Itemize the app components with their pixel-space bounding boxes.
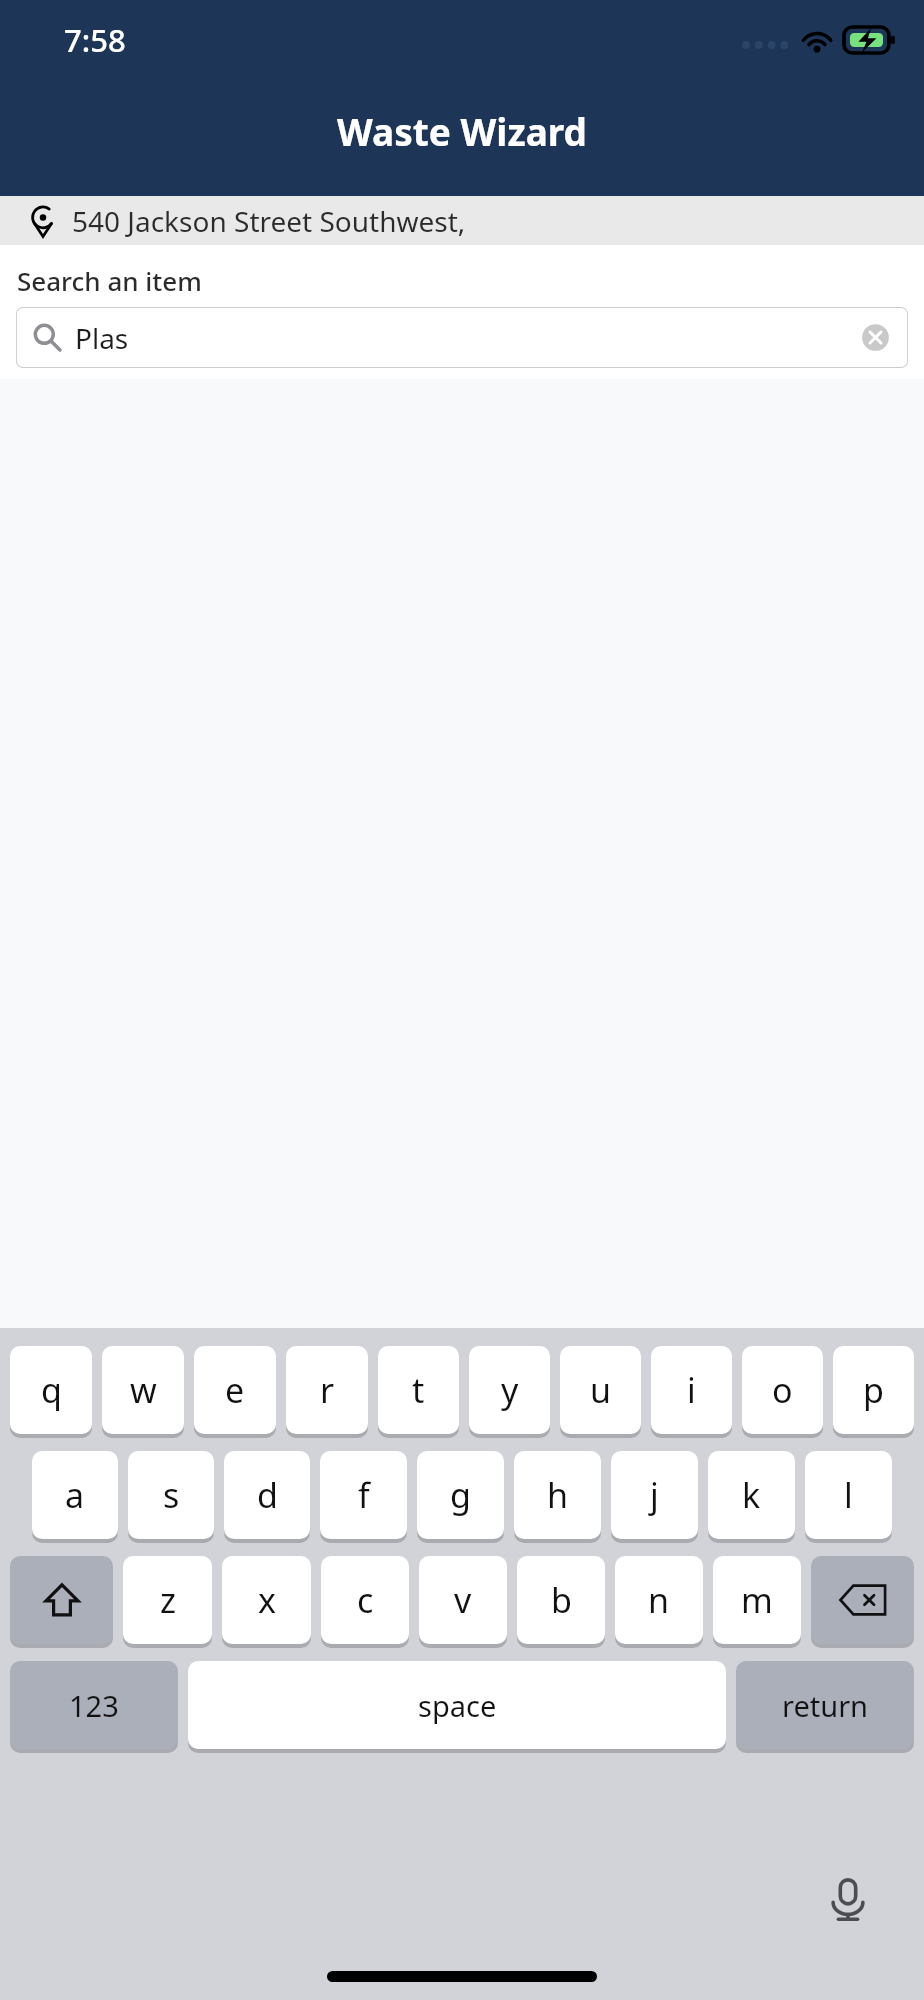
staticText: u	[590, 1367, 612, 1413]
staticText: r	[320, 1367, 335, 1413]
button[interactable]: f	[320, 1451, 407, 1539]
staticText: j	[650, 1472, 659, 1518]
button[interactable]: a	[32, 1451, 118, 1539]
staticText: Waste Wizard	[337, 106, 587, 156]
staticText: 7:58	[64, 19, 126, 61]
staticText: 540 Jackson Street Southwest,	[72, 202, 466, 240]
staticText: h	[547, 1472, 569, 1518]
staticText: y	[501, 1367, 519, 1413]
button[interactable]: u	[560, 1346, 641, 1434]
staticText: k	[742, 1472, 761, 1518]
button[interactable]: d	[224, 1451, 310, 1539]
button[interactable]: q	[10, 1346, 92, 1434]
staticText: e	[225, 1367, 245, 1413]
button[interactable]: z	[123, 1556, 212, 1644]
staticText: z	[160, 1577, 176, 1623]
button[interactable]: x	[222, 1556, 311, 1644]
button[interactable]: Plas	[16, 307, 908, 368]
button[interactable]: o	[742, 1346, 823, 1434]
staticText: p	[863, 1367, 884, 1413]
button[interactable]: Shift	[10, 1556, 113, 1644]
button[interactable]: n	[615, 1556, 703, 1644]
button[interactable]: 540 Jackson Street Southwest,	[0, 196, 924, 245]
staticText: o	[772, 1367, 793, 1413]
staticText: d	[257, 1472, 278, 1518]
button[interactable]: r	[286, 1346, 368, 1434]
button[interactable]: v	[419, 1556, 507, 1644]
staticText: 123	[69, 1686, 119, 1725]
staticText: x	[258, 1577, 276, 1623]
staticText: t	[412, 1367, 425, 1413]
button[interactable]: s	[128, 1451, 214, 1539]
staticText: g	[450, 1472, 471, 1518]
staticText: f	[358, 1472, 370, 1518]
button[interactable]: h	[514, 1451, 601, 1539]
staticText: q	[41, 1367, 62, 1413]
button[interactable]: g	[417, 1451, 504, 1539]
staticText: s	[163, 1472, 180, 1518]
button[interactable]: k	[708, 1451, 795, 1539]
button[interactable]: p	[833, 1346, 914, 1434]
staticText: Plas	[75, 319, 129, 357]
staticText: space	[418, 1686, 497, 1725]
button[interactable]: Backspace	[811, 1556, 914, 1644]
staticText: b	[551, 1577, 572, 1623]
button[interactable]: c	[321, 1556, 409, 1644]
button[interactable]: Clear search	[861, 323, 890, 352]
button[interactable]: 123	[10, 1661, 178, 1749]
staticText: v	[454, 1577, 472, 1623]
button[interactable]: l	[805, 1451, 892, 1539]
button[interactable]: b	[517, 1556, 605, 1644]
button[interactable]: Dictate	[824, 1876, 872, 1924]
staticText: a	[65, 1472, 85, 1518]
button[interactable]: e	[194, 1346, 276, 1434]
button[interactable]: i	[651, 1346, 732, 1434]
staticText: n	[648, 1577, 670, 1623]
staticText: Search an item	[17, 263, 202, 298]
button[interactable]: t	[378, 1346, 459, 1434]
staticText: w	[130, 1367, 157, 1413]
button[interactable]: y	[469, 1346, 550, 1434]
staticText: m	[741, 1577, 773, 1623]
button[interactable]: w	[102, 1346, 184, 1434]
button[interactable]: j	[611, 1451, 698, 1539]
button[interactable]: m	[713, 1556, 801, 1644]
staticText: i	[687, 1367, 696, 1413]
button[interactable]: return	[736, 1661, 914, 1749]
staticText: return	[782, 1686, 869, 1725]
button[interactable]: space	[188, 1661, 726, 1749]
staticText: l	[844, 1472, 853, 1518]
staticText: c	[357, 1577, 374, 1623]
